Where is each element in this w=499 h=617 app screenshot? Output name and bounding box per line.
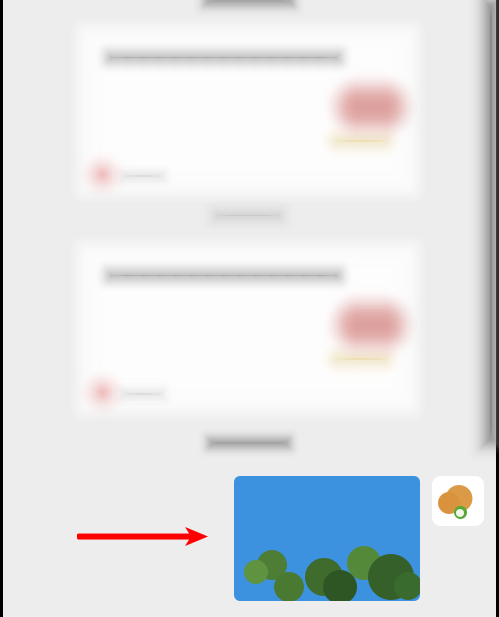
button[interactable]	[234, 476, 420, 601]
button[interactable]: Avatar	[432, 476, 484, 526]
button[interactable]	[0, 0, 499, 617]
button[interactable]	[0, 0, 499, 617]
